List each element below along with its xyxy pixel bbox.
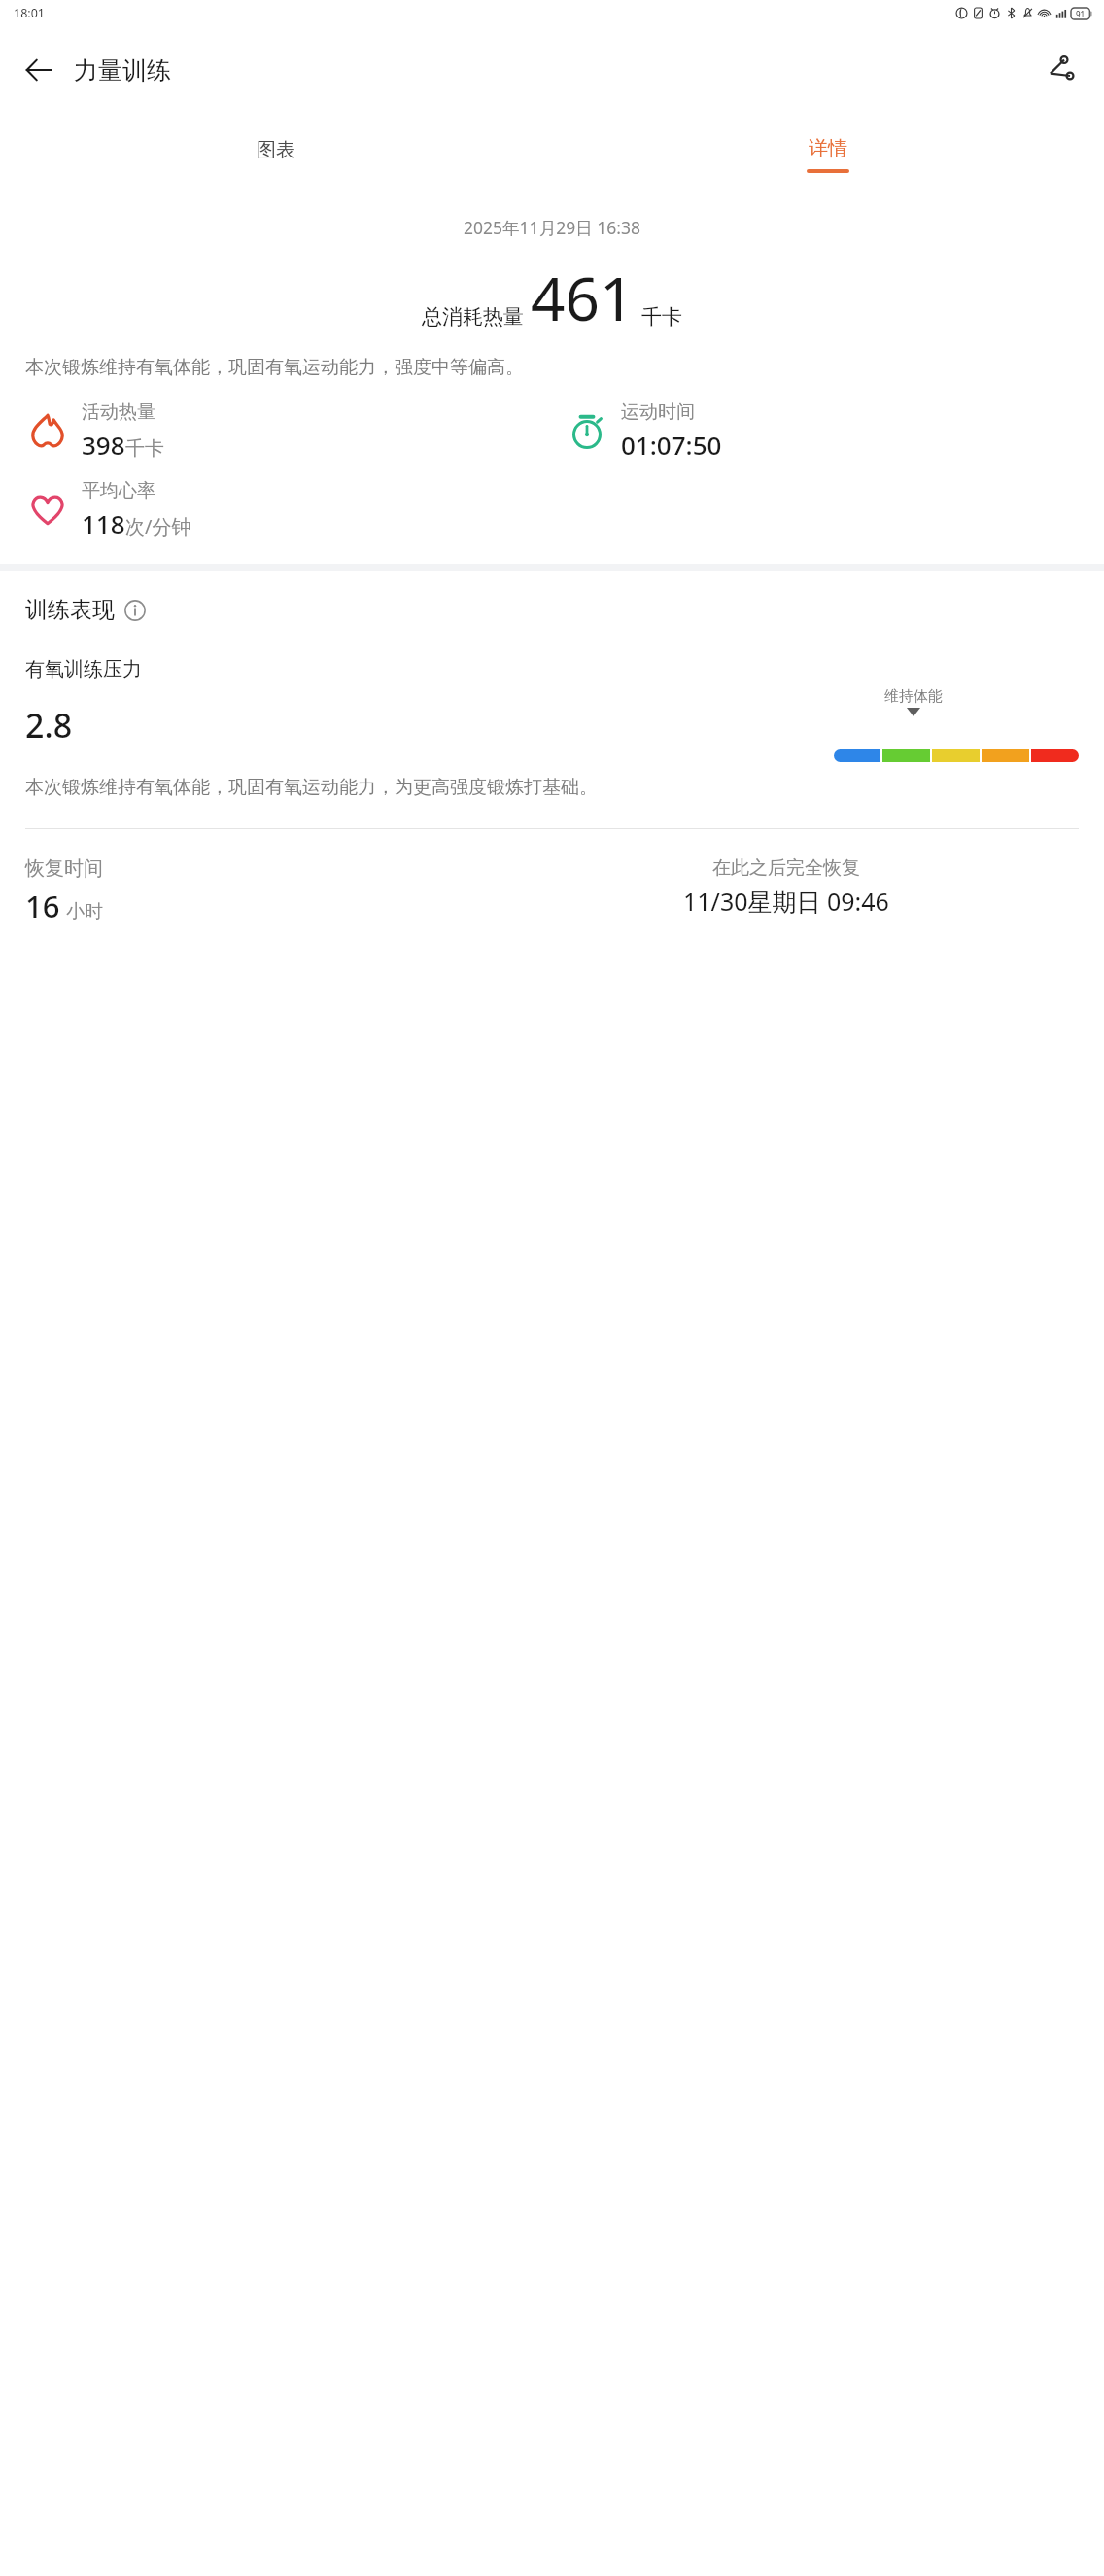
staticText: 恢复时间: [25, 856, 103, 881]
staticText: 2.8: [25, 703, 73, 748]
staticText: 本次锻炼维持有氧体能，巩固有氧运动能力，强度中等偏高。: [25, 356, 1079, 379]
button[interactable]: 图表: [0, 115, 552, 194]
staticText: 461: [531, 257, 635, 338]
staticText: 本次锻炼维持有氧体能，巩固有氧运动能力，为更高强度锻炼打基础。: [25, 776, 598, 799]
staticText: 千卡: [125, 436, 164, 461]
staticText: 398: [82, 428, 125, 462]
staticText: 力量训练: [74, 55, 171, 86]
button[interactable]: 详情: [552, 115, 1104, 194]
staticText: 次/分钟: [125, 513, 191, 540]
staticText: 01:07:50: [621, 428, 722, 462]
staticText: 详情: [809, 136, 847, 160]
staticText: 有氧训练压力: [25, 657, 142, 681]
button[interactable]: 训练表现: [25, 596, 146, 624]
button[interactable]: 活动热量: [25, 400, 565, 462]
staticText: 16: [25, 886, 60, 926]
staticText: 118: [82, 506, 125, 540]
staticText: 18:01: [14, 5, 45, 21]
staticText: 91: [1076, 9, 1086, 19]
button[interactable]: Share: [1036, 45, 1087, 95]
staticText: 维持体能: [884, 687, 943, 706]
staticText: 活动热量: [82, 400, 155, 424]
staticText: 训练表现: [25, 596, 115, 624]
staticText: 千卡: [641, 304, 682, 330]
staticText: 运动时间: [621, 400, 695, 424]
staticText: 图表: [257, 138, 295, 162]
staticText: 小时: [66, 900, 103, 923]
staticText: 平均心率: [82, 479, 155, 503]
button[interactable]: 运动时间: [565, 400, 1104, 462]
button[interactable]: 平均心率: [25, 479, 565, 540]
staticText: 2025年11月29日 16:38: [0, 216, 1104, 239]
button[interactable]: Back: [14, 45, 64, 95]
staticText: 总消耗热量: [422, 304, 524, 330]
staticText: 在此之后完全恢复: [712, 856, 860, 880]
staticText: 11/30星期日 09:46: [683, 885, 889, 918]
